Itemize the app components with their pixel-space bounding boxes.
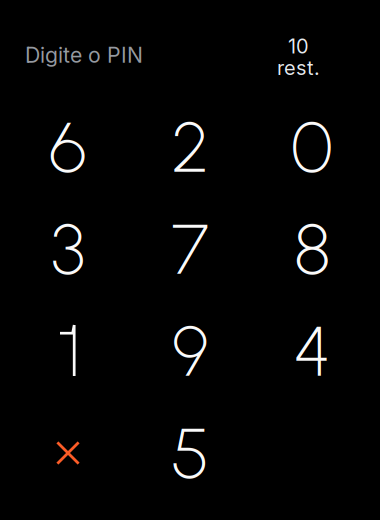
staticText: 4	[293, 309, 330, 393]
button[interactable]: 6	[7, 96, 129, 198]
button[interactable]: 7	[129, 198, 251, 300]
button[interactable]: 8	[251, 198, 373, 300]
staticText: 0	[291, 105, 333, 189]
button[interactable]: Clear	[7, 402, 129, 504]
button[interactable]: 5	[129, 402, 251, 504]
button[interactable]: 3	[7, 198, 129, 300]
staticText: 2	[171, 105, 208, 189]
button[interactable]	[7, 300, 129, 402]
staticText: 8	[294, 207, 330, 291]
staticText: rest.	[277, 56, 320, 80]
staticText: 7	[171, 207, 208, 291]
staticText: 10	[288, 34, 309, 58]
button[interactable]: 2	[129, 96, 251, 198]
staticText: 5	[171, 411, 209, 495]
button[interactable]: 4	[251, 300, 373, 402]
staticText: 9	[172, 309, 208, 393]
staticText: 6	[49, 105, 87, 189]
staticText: 3	[51, 207, 85, 291]
button[interactable]: 0	[251, 96, 373, 198]
button[interactable]: 9	[129, 300, 251, 402]
staticText: Digite o PIN	[25, 42, 143, 68]
